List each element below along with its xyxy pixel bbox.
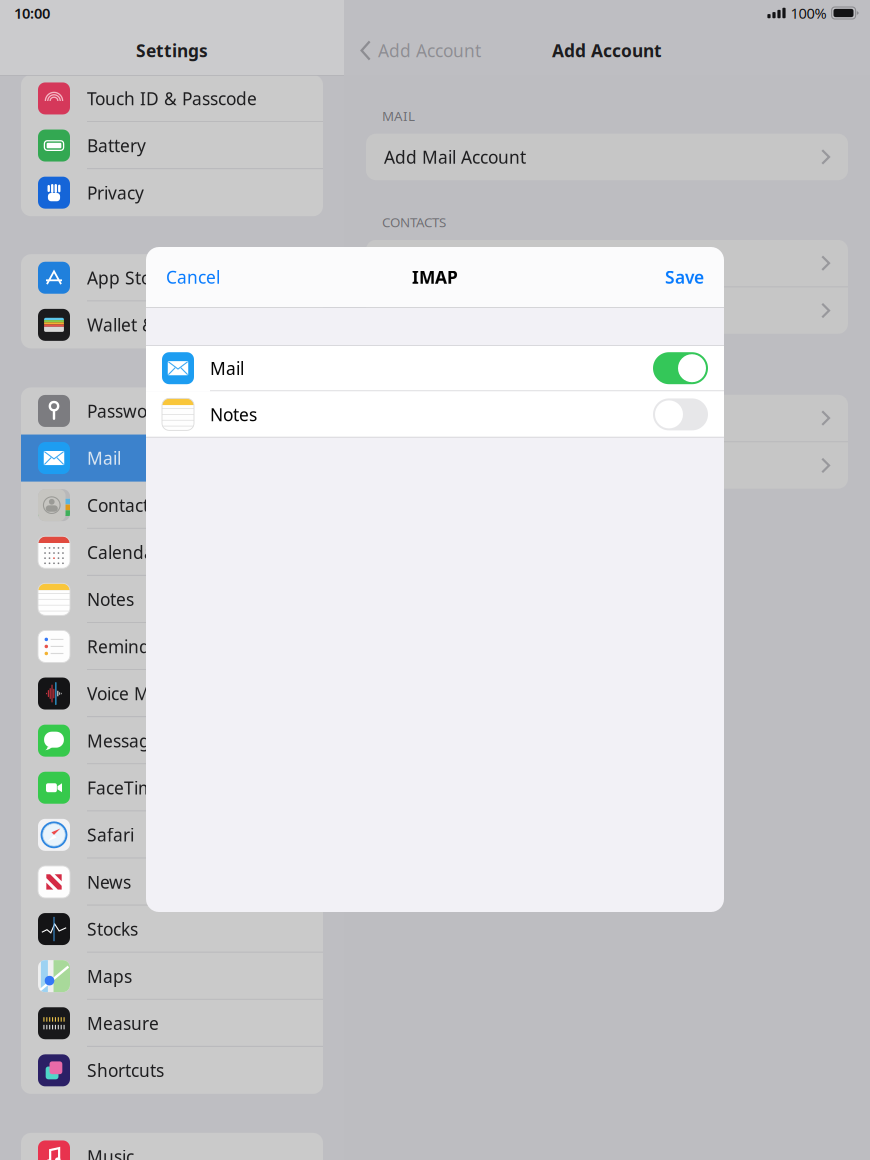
staticText: Music <box>87 1145 134 1160</box>
staticText: Notes <box>210 403 257 426</box>
button[interactable]: Wallet & Apple Pay <box>21 301 323 348</box>
staticText: Messages <box>87 729 168 752</box>
button[interactable]: Add Mail Account <box>366 134 848 180</box>
button[interactable]: Save <box>645 247 724 307</box>
button[interactable]: Measure <box>21 1000 323 1047</box>
staticText: Notes <box>87 588 134 611</box>
staticText: Settings <box>136 39 208 62</box>
button[interactable]: Shortcuts <box>21 1047 323 1094</box>
staticText: Privacy <box>87 181 144 204</box>
button[interactable]: News <box>21 858 323 905</box>
button[interactable]: Mail <box>146 345 724 391</box>
button[interactable]: App Store <box>21 254 323 301</box>
staticText: Shortcuts <box>87 1059 164 1082</box>
staticText: Battery <box>87 134 146 157</box>
button[interactable]: Mail <box>21 434 323 482</box>
staticText: Mail <box>87 446 121 469</box>
button[interactable]: Messages <box>21 717 323 764</box>
staticText: 10:00 <box>14 3 50 23</box>
staticText: News <box>87 870 131 893</box>
button[interactable]: Privacy <box>21 169 323 216</box>
staticText: IMAP <box>412 265 458 288</box>
staticText: Contacts <box>87 494 157 517</box>
button[interactable] <box>366 240 848 286</box>
button[interactable]: Music <box>21 1133 323 1160</box>
staticText: Add Account <box>552 39 662 62</box>
staticText: Wallet & Apple Pay <box>87 313 241 336</box>
button[interactable]: Maps <box>21 953 323 1000</box>
staticText: Touch ID & Passcode <box>87 87 257 110</box>
button[interactable]: Calendar <box>21 529 323 576</box>
button[interactable]: Cancel <box>146 247 240 307</box>
staticText: Cancel <box>166 265 220 288</box>
button[interactable] <box>366 442 848 489</box>
button[interactable]: Add Account <box>344 26 481 75</box>
staticText: Calendar <box>87 541 161 564</box>
button[interactable]: Contacts <box>21 482 323 529</box>
button[interactable]: FaceTime <box>21 764 323 811</box>
staticText: Measure <box>87 1012 159 1035</box>
staticText: FaceTime <box>87 776 164 799</box>
button[interactable]: Touch ID & Passcode <box>21 75 323 122</box>
staticText: Save <box>665 265 704 288</box>
button[interactable]: Reminders <box>21 623 323 670</box>
button[interactable]: Battery <box>21 122 323 169</box>
button[interactable]: Notes <box>146 391 724 437</box>
staticText: Voice Memos <box>87 682 194 705</box>
button[interactable]: Notes <box>21 576 323 623</box>
button[interactable]: Safari <box>21 811 323 858</box>
staticText: Add Mail Account <box>384 145 526 168</box>
staticText: Mail <box>210 357 244 380</box>
button[interactable] <box>366 395 848 441</box>
staticText: CONTACTS <box>382 213 446 231</box>
staticText: Reminders <box>87 635 175 658</box>
button[interactable] <box>366 287 848 334</box>
button[interactable]: Passwords & Accounts <box>21 387 323 434</box>
staticText: Add Account <box>378 39 481 62</box>
staticText: 100% <box>791 3 827 23</box>
staticText: MAIL <box>382 107 415 125</box>
button[interactable]: Stocks <box>21 905 323 953</box>
staticText: Passwords & Accounts <box>87 399 269 422</box>
staticText: App Store <box>87 266 168 289</box>
button[interactable]: Voice Memos <box>21 670 323 717</box>
staticText: Safari <box>87 823 134 846</box>
staticText: Maps <box>87 965 132 988</box>
staticText: Stocks <box>87 917 138 940</box>
